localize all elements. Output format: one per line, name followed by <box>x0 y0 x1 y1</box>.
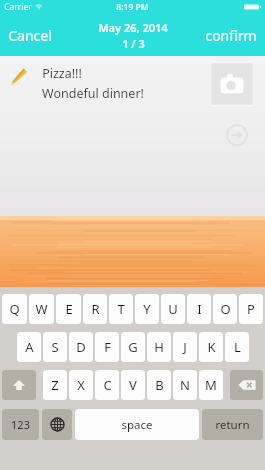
staticText: May 26, 2014 <box>98 20 168 35</box>
staticText: W <box>35 300 48 318</box>
button[interactable]: W <box>29 294 54 324</box>
button[interactable]: 123 <box>2 409 39 440</box>
staticText: X <box>77 376 85 394</box>
staticText: V <box>129 376 137 394</box>
staticText: Q <box>9 300 20 318</box>
button[interactable]: O <box>213 294 237 324</box>
button[interactable]: F <box>95 332 119 362</box>
button[interactable]: L <box>225 332 249 362</box>
staticText: Cancel <box>8 26 52 45</box>
staticText: N <box>180 376 190 394</box>
button[interactable]: Q <box>2 294 27 324</box>
button[interactable]: confirm <box>195 18 265 53</box>
staticText: A <box>25 338 34 356</box>
button[interactable]: R <box>83 294 107 324</box>
staticText: B <box>155 376 164 394</box>
staticText: D <box>76 338 86 356</box>
button[interactable]: return <box>202 409 263 440</box>
button[interactable]: Shift <box>2 370 36 400</box>
button[interactable]: B <box>147 370 171 400</box>
button[interactable]: Switch keyboard <box>42 409 72 440</box>
staticText: C <box>103 376 112 394</box>
button[interactable]: V <box>121 370 145 400</box>
button[interactable]: D <box>69 332 93 362</box>
staticText: return <box>215 417 250 433</box>
staticText: J <box>183 338 187 356</box>
staticText: confirm <box>205 26 257 45</box>
button[interactable]: J <box>173 332 197 362</box>
button[interactable]: Z <box>43 370 67 400</box>
button[interactable]: I <box>187 294 211 324</box>
staticText: Carrier <box>4 1 32 13</box>
button[interactable]: M <box>199 370 223 400</box>
staticText: Pizza!!! <box>42 65 82 82</box>
staticText: I <box>197 300 202 318</box>
staticText: M <box>205 376 217 394</box>
button[interactable]: space <box>75 409 199 440</box>
button[interactable]: T <box>109 294 133 324</box>
staticText: 8:19 PM <box>116 1 149 13</box>
staticText: 1 / 3 <box>122 36 145 51</box>
button[interactable]: K <box>199 332 223 362</box>
staticText: F <box>104 338 111 356</box>
staticText: H <box>154 338 164 356</box>
button[interactable]: S <box>43 332 67 362</box>
button[interactable]: A <box>17 332 41 362</box>
staticText: G <box>128 338 138 356</box>
staticText: Wondeful dinner! <box>42 85 144 102</box>
staticText: Z <box>51 376 59 394</box>
staticText: O <box>220 300 231 318</box>
staticText: Y <box>143 300 151 318</box>
button[interactable]: U <box>161 294 185 324</box>
button[interactable]: N <box>173 370 197 400</box>
button[interactable]: Next <box>226 124 248 146</box>
button[interactable]: G <box>121 332 145 362</box>
staticText: 123 <box>11 417 30 432</box>
button[interactable]: E <box>56 294 81 324</box>
staticText: L <box>234 338 241 356</box>
staticText: S <box>51 338 59 356</box>
staticText: U <box>168 300 178 318</box>
button[interactable]: C <box>95 370 119 400</box>
staticText: K <box>207 338 216 356</box>
button[interactable]: Backspace <box>230 370 263 400</box>
staticText: space <box>121 417 153 433</box>
button[interactable]: Cancel <box>0 18 62 53</box>
staticText: E <box>65 300 73 318</box>
staticText: R <box>91 300 100 318</box>
staticText: P <box>247 300 255 318</box>
button[interactable]: Y <box>135 294 159 324</box>
button[interactable]: X <box>69 370 93 400</box>
button[interactable]: Take photo <box>210 62 254 106</box>
button[interactable]: H <box>147 332 171 362</box>
staticText: T <box>117 300 125 318</box>
button[interactable]: P <box>239 294 263 324</box>
